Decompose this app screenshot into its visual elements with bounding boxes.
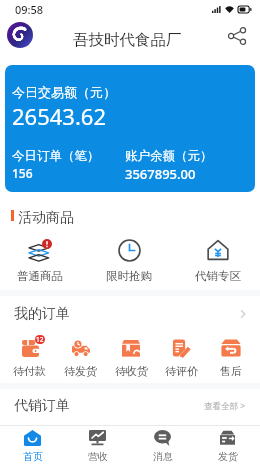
button[interactable]: 消息 bbox=[130, 426, 195, 465]
staticText: 消息 bbox=[153, 450, 173, 463]
staticText: 待评价 bbox=[165, 364, 198, 378]
staticText: 待收货 bbox=[115, 364, 148, 378]
button[interactable]: 我的订单 bbox=[0, 296, 260, 332]
button[interactable]: 12 bbox=[4, 338, 55, 378]
button[interactable]: 待评价 bbox=[156, 338, 206, 378]
staticText: 今日交易额（元） bbox=[12, 84, 116, 100]
staticText: 限时抢购 bbox=[106, 269, 152, 283]
staticText: 我的订单 bbox=[14, 305, 70, 323]
button[interactable]: 发货 bbox=[195, 426, 260, 465]
staticText: 账户余额（元） bbox=[125, 148, 213, 164]
button[interactable]: 今日交易额（元） bbox=[5, 65, 255, 192]
staticText: 今日订单（笔） bbox=[12, 148, 100, 164]
staticText: 代销订单 bbox=[14, 397, 70, 415]
staticText: 首页 bbox=[23, 450, 43, 463]
button[interactable]: 营收 bbox=[65, 426, 130, 465]
button[interactable]: 限时抢购 bbox=[99, 238, 159, 283]
staticText: 查看全部 > bbox=[204, 400, 246, 412]
staticText: 待付款 bbox=[13, 364, 46, 378]
button[interactable]: 代销订单 bbox=[0, 389, 260, 423]
staticText: 代销专区 bbox=[195, 269, 241, 283]
staticText: 发货 bbox=[218, 450, 238, 463]
button[interactable]: 代销专区 bbox=[188, 238, 248, 283]
button[interactable]: 首页 bbox=[0, 426, 65, 465]
button[interactable]: 售后 bbox=[206, 338, 256, 378]
staticText: 待发货 bbox=[64, 364, 97, 378]
button[interactable]: 待收货 bbox=[106, 338, 156, 378]
staticText: 售后 bbox=[220, 364, 242, 378]
staticText: 26543.62 bbox=[12, 101, 106, 131]
staticText: 3567895.00 bbox=[125, 165, 196, 183]
staticText: 156 bbox=[12, 165, 33, 181]
button[interactable]: 普通商品 bbox=[10, 238, 70, 283]
staticText: 活动商品 bbox=[18, 209, 74, 227]
staticText: 普通商品 bbox=[17, 269, 63, 283]
button[interactable]: Share bbox=[224, 23, 250, 49]
staticText: 12 bbox=[36, 335, 44, 344]
staticText: 吾技时代食品厂 bbox=[73, 30, 182, 50]
staticText: 营收 bbox=[88, 450, 108, 463]
button[interactable]: Logo bbox=[7, 22, 33, 48]
staticText: 09:58 bbox=[15, 2, 44, 17]
button[interactable]: 待发货 bbox=[55, 338, 106, 378]
